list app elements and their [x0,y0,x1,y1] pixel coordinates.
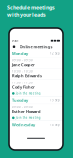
staticText: 10:00 - 10:30 [12,70,33,73]
staticText: Jane Cooper [12,62,35,67]
staticText: Online meetings [19,44,52,49]
staticText: Schedule meetings [7,4,55,11]
staticText: 14 Sep [50,123,60,126]
staticText: 09:00 - 09:30 [12,105,33,109]
staticText: Join the meeting [16,92,41,95]
button[interactable]: 09:00 - 09:30 [9,57,63,68]
staticText: Tuesday [12,97,28,103]
staticText: Wednesday [12,122,35,127]
button[interactable]: 09:00 - 09:30 [9,104,63,115]
staticText: 9:41 [12,39,19,42]
staticText: 12 Sep [50,52,60,55]
button[interactable]: Join the meeting [9,115,63,121]
button[interactable]: 10:00 - 10:30 [9,69,63,79]
button[interactable]: 11:00 - 11:30 [9,80,63,91]
staticText: Ralph Edwards [12,73,42,78]
staticText: 09:00 - 09:30 [12,58,33,62]
staticText: 13 Sep [50,98,60,102]
staticText: 11:00 - 11:30 [12,81,33,84]
staticText: Join the meeting [16,116,41,120]
button[interactable]: Join the meeting [9,91,63,96]
button[interactable]: Back [12,45,16,49]
staticText: Monday [12,51,28,56]
staticText: with your leads [7,11,46,18]
staticText: Esther Howard [12,109,41,114]
staticText: Cody Fisher [12,84,35,90]
